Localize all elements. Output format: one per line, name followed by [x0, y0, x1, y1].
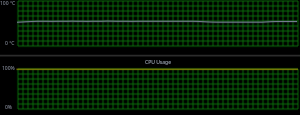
- staticText: 100%: [2, 65, 15, 72]
- staticText: 0 °C: [5, 40, 15, 47]
- staticText: 100 °C: [0, 0, 16, 7]
- staticText: 0%: [5, 104, 13, 111]
- staticText: CPU Usage: [8, 59, 300, 66]
